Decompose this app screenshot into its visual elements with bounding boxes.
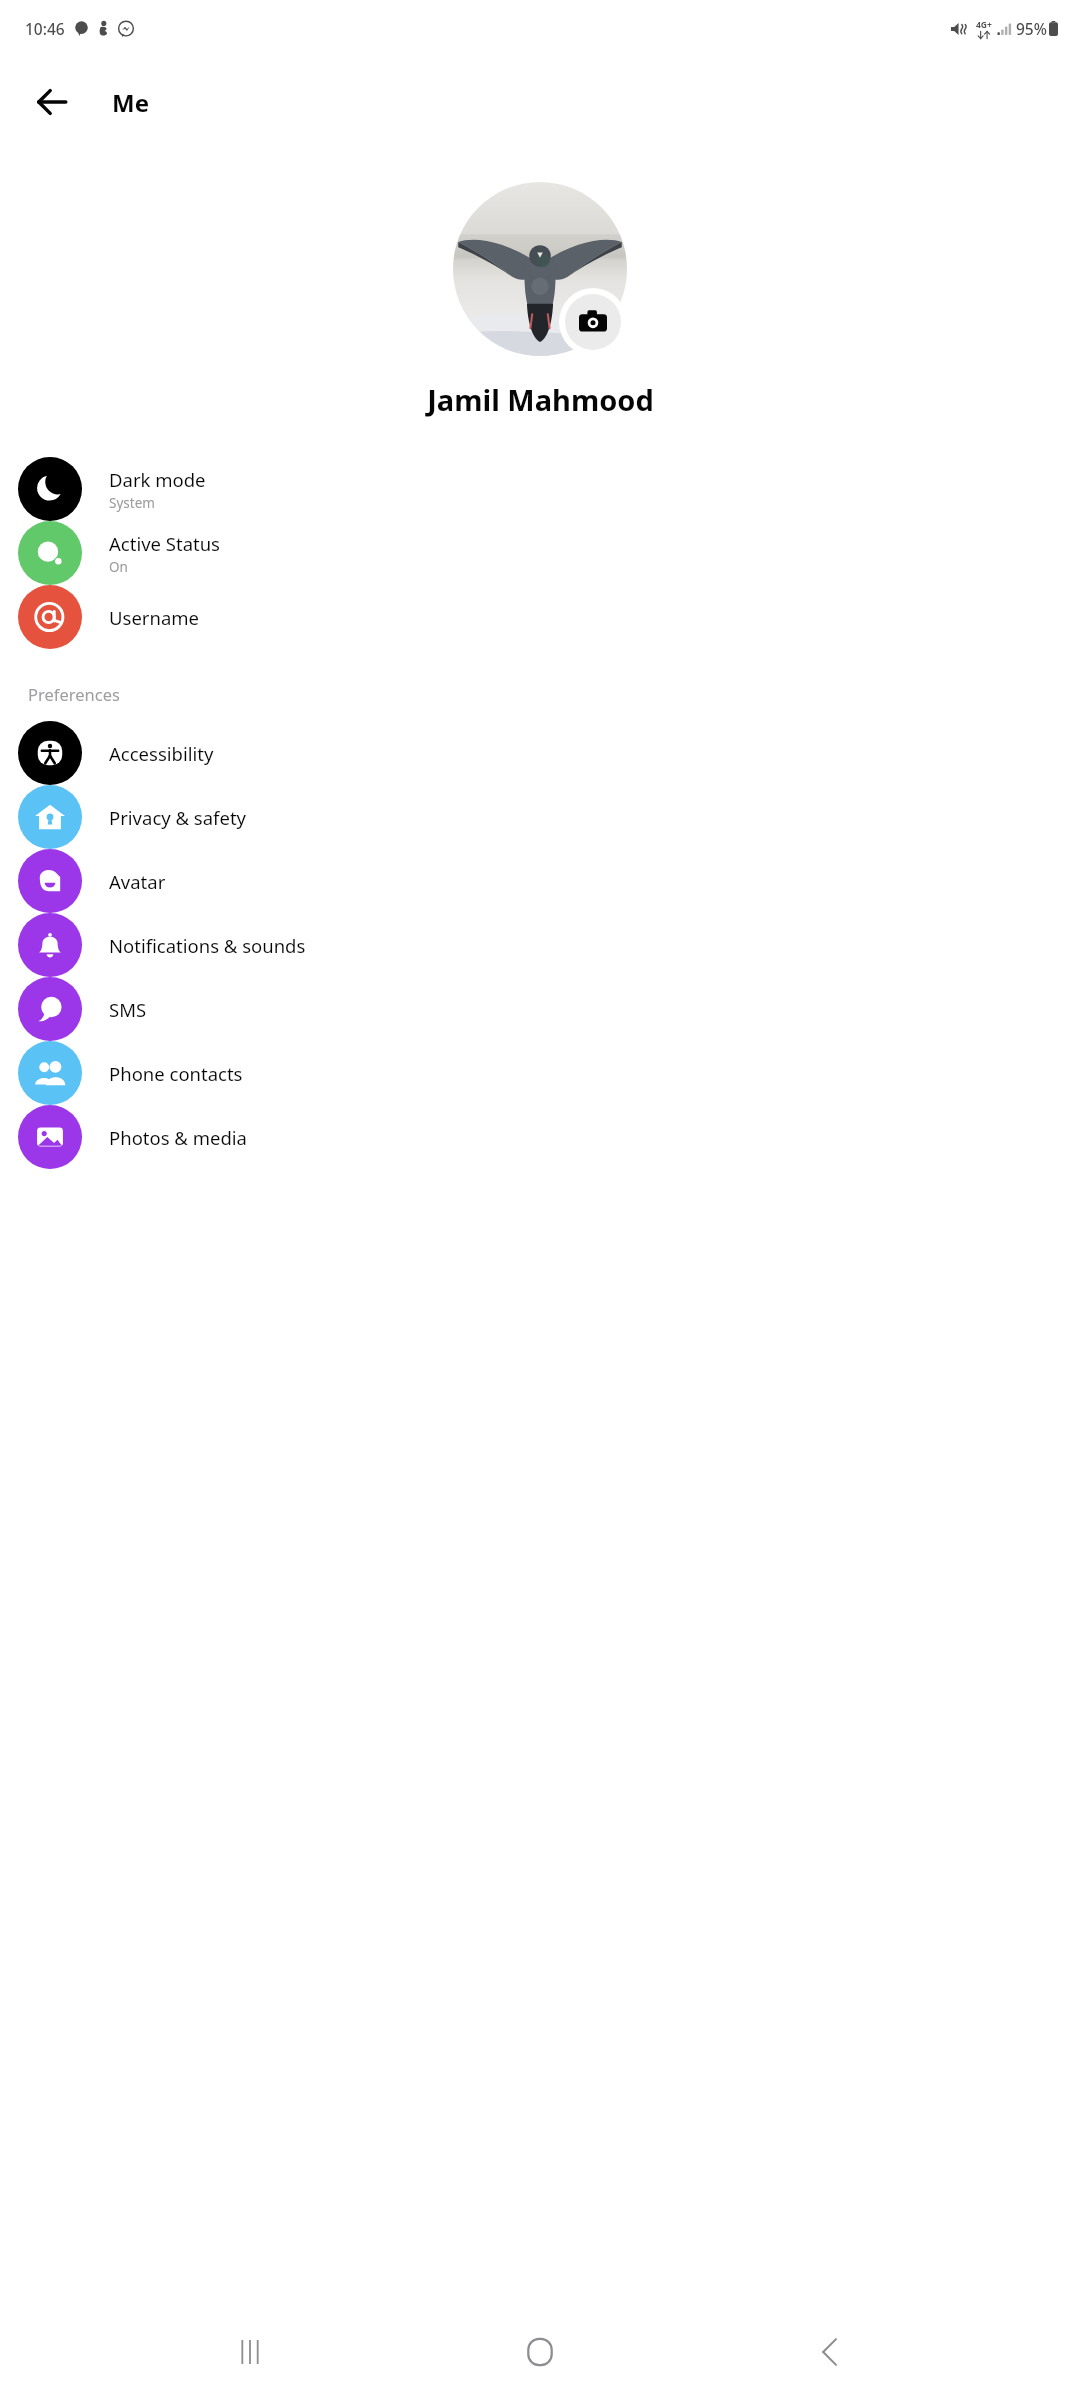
button[interactable]: Change profile photo [453,182,627,356]
staticText: Me [112,86,149,119]
button[interactable]: Back [24,74,80,130]
staticText: SMS [109,997,147,1022]
staticText: Active Status [109,531,220,556]
staticText: Username [109,605,200,630]
staticText: Notifications & sounds [109,933,306,958]
button[interactable]: Active Status [0,521,1080,585]
button[interactable]: Home [500,2312,580,2392]
staticText: Avatar [109,869,166,894]
button[interactable]: SMS [0,977,1080,1041]
button[interactable]: Phone contacts [0,1041,1080,1105]
staticText: Photos & media [109,1125,247,1150]
button[interactable]: Notifications & sounds [0,913,1080,977]
staticText: 95% [1016,18,1047,39]
button[interactable]: Username [0,585,1080,649]
staticText: 10:46 [25,18,65,39]
button[interactable]: Avatar [0,849,1080,913]
staticText: Jamil Mahmood [427,380,654,419]
button[interactable]: Privacy & safety [0,785,1080,849]
button[interactable]: Accessibility [0,721,1080,785]
button[interactable]: Back [790,2312,870,2392]
staticText: On [109,558,128,576]
staticText: Preferences [28,683,120,705]
staticText: System [109,494,155,512]
staticText: Privacy & safety [109,805,247,830]
staticText: Phone contacts [109,1061,243,1086]
button[interactable]: Photos & media [0,1105,1080,1169]
staticText: 4G+ [976,19,992,31]
staticText: Dark mode [109,467,206,492]
button[interactable]: Dark mode [0,457,1080,521]
staticText: Accessibility [109,741,214,766]
button[interactable]: Recents [210,2312,290,2392]
